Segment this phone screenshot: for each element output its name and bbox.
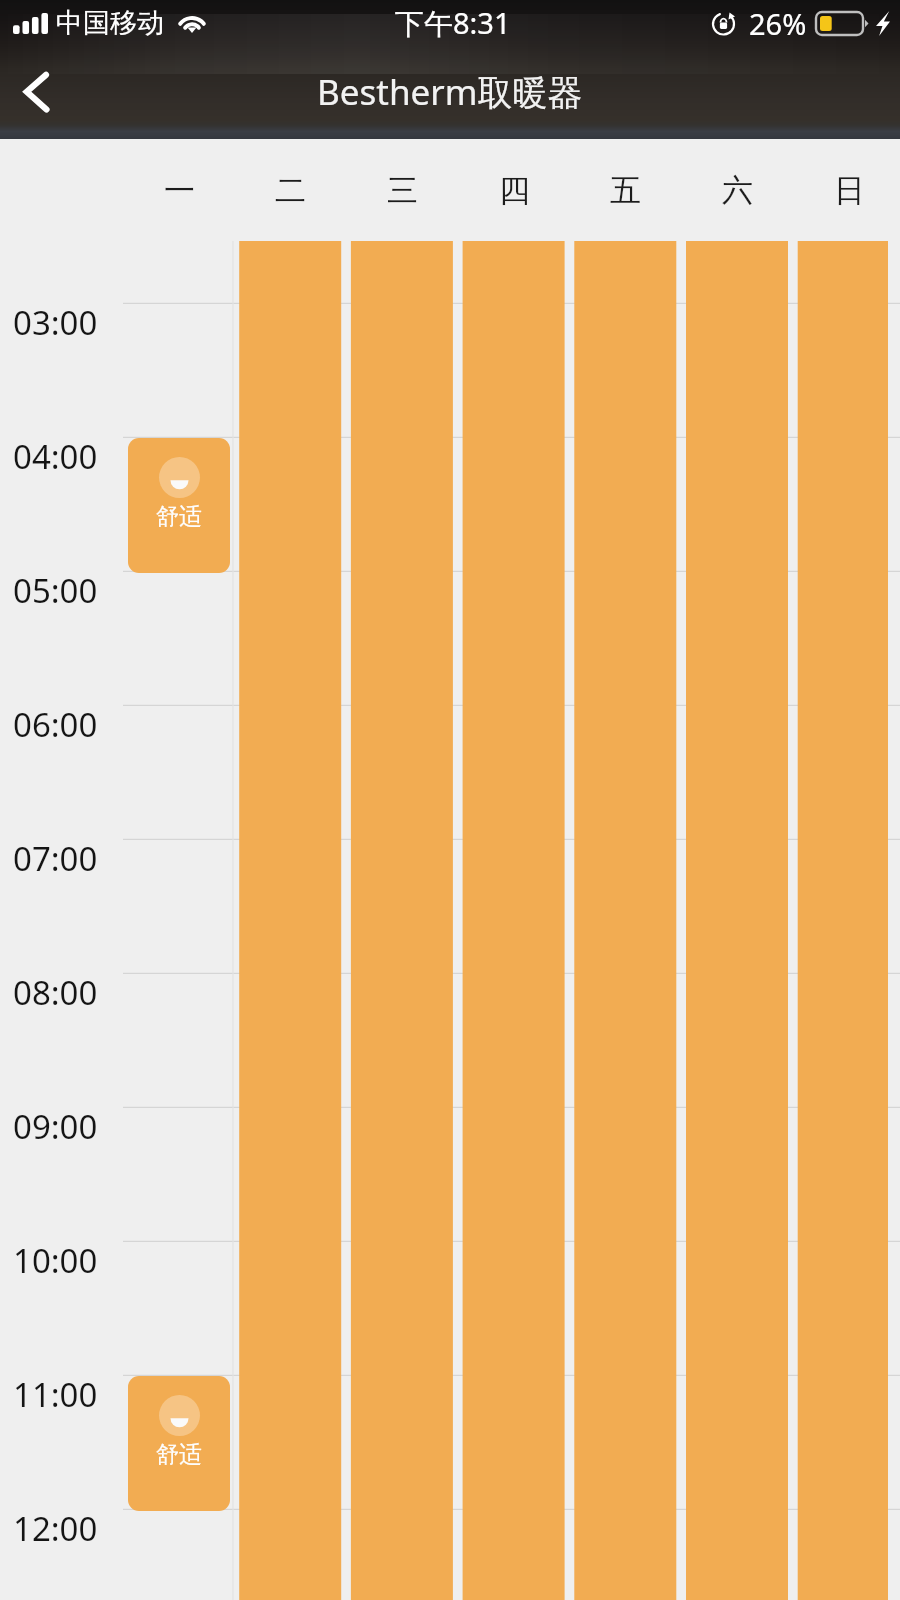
button[interactable]: 舒适 <box>128 1376 230 1511</box>
button[interactable]: 一 <box>123 139 235 241</box>
staticText: 六 <box>722 171 753 210</box>
staticText: 05:00 <box>13 568 98 612</box>
staticText: 四 <box>499 171 530 210</box>
button[interactable]: 五 <box>569 139 681 241</box>
staticText: 下午8:31 <box>395 3 511 43</box>
staticText: 04:00 <box>13 434 98 478</box>
button[interactable]: 二 <box>234 139 346 241</box>
staticText: 中国移动 <box>56 6 164 40</box>
button[interactable]: 四 <box>458 139 570 241</box>
button[interactable]: 舒适 <box>128 438 230 573</box>
staticText: 舒适 <box>156 502 202 531</box>
button[interactable]: 舒适 五 <box>574 241 676 1600</box>
staticText: Bestherm取暖器 <box>317 68 583 116</box>
staticText: 三 <box>387 171 418 210</box>
staticText: 一 <box>164 171 195 210</box>
button[interactable]: 三 <box>346 139 458 241</box>
staticText: 五 <box>610 171 641 210</box>
button[interactable]: 舒适 四 <box>463 241 565 1600</box>
button[interactable]: 六 <box>681 139 793 241</box>
staticText: 舒适 <box>156 1440 202 1469</box>
staticText: 日 <box>834 171 865 210</box>
staticText: 06:00 <box>13 702 98 746</box>
staticText: 12:00 <box>13 1506 98 1550</box>
staticText: 10:00 <box>13 1238 98 1282</box>
staticText: 二 <box>275 171 306 210</box>
staticText: 09:00 <box>13 1104 98 1148</box>
staticText: 11:00 <box>13 1372 98 1416</box>
button[interactable]: 日 <box>793 139 900 241</box>
staticText: 03:00 <box>13 300 98 344</box>
staticText: 07:00 <box>13 836 98 880</box>
staticText: 26% <box>749 4 807 43</box>
staticText: 08:00 <box>13 970 98 1014</box>
button[interactable]: Back <box>4 57 76 129</box>
